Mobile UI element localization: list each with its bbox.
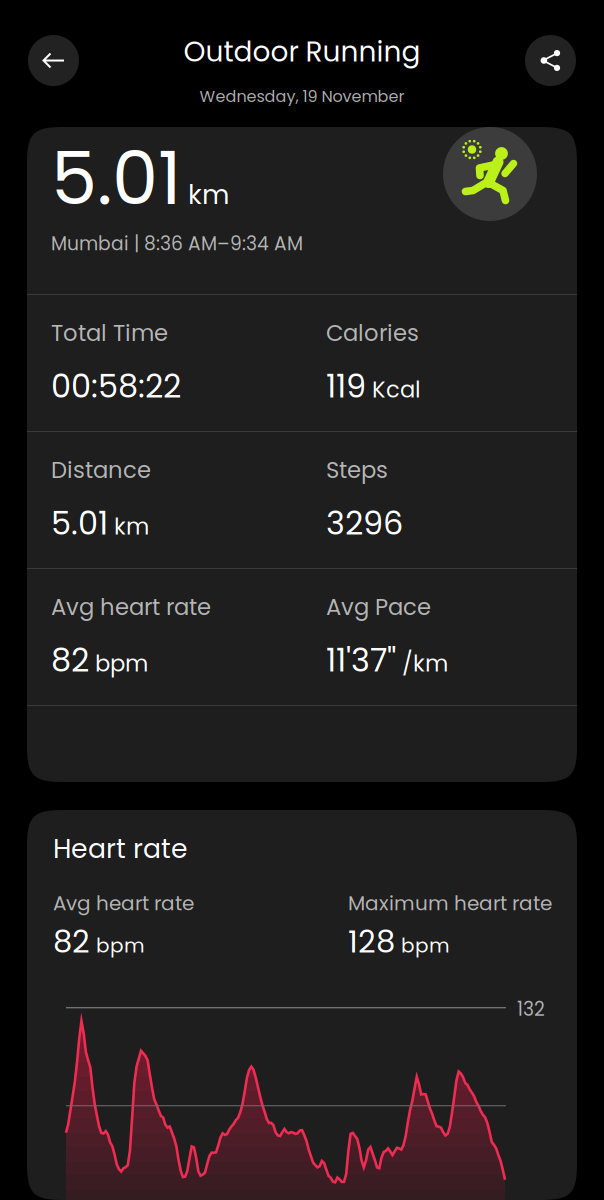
button[interactable]: Share bbox=[525, 35, 576, 86]
staticText: 82 bbox=[51, 638, 89, 683]
staticText: 82 bbox=[53, 920, 90, 963]
staticText: Steps bbox=[326, 454, 388, 486]
staticText: Avg heart rate bbox=[51, 591, 211, 623]
staticText: Kcal bbox=[372, 374, 421, 405]
staticText: Distance bbox=[51, 454, 151, 486]
staticText: bpm bbox=[95, 648, 148, 679]
staticText: km bbox=[188, 176, 229, 213]
staticText: Total Time bbox=[51, 317, 168, 349]
staticText: 11'37" bbox=[326, 638, 396, 683]
staticText: /km bbox=[402, 648, 448, 679]
button[interactable]: Back bbox=[28, 35, 79, 86]
staticText: km bbox=[114, 511, 149, 542]
staticText: 132 bbox=[517, 996, 545, 1022]
staticText: Wednesday, 19 November bbox=[199, 85, 404, 108]
staticText: 5.01 bbox=[51, 127, 181, 230]
staticText: 00:58:22 bbox=[51, 364, 181, 409]
staticText: bpm bbox=[96, 931, 145, 959]
staticText: Avg Pace bbox=[326, 591, 431, 623]
staticText: bpm bbox=[401, 931, 450, 959]
staticText: 3296 bbox=[326, 501, 403, 546]
staticText: 128 bbox=[348, 920, 395, 963]
staticText: Heart rate bbox=[53, 830, 188, 867]
staticText: Calories bbox=[326, 317, 419, 349]
staticText: 119 bbox=[326, 364, 366, 409]
staticText: Avg heart rate bbox=[53, 889, 194, 917]
staticText: 5.01 bbox=[51, 501, 108, 546]
staticText: Maximum heart rate bbox=[348, 889, 552, 917]
staticText: Outdoor Running bbox=[183, 32, 420, 71]
staticText: Mumbai | 8:36 AM–9:34 AM bbox=[51, 231, 303, 257]
